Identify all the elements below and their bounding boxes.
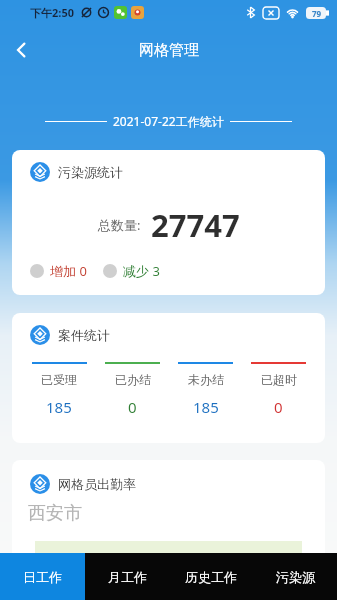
staticText: 未办结 [188, 372, 224, 387]
staticText: 日工作 [23, 569, 62, 585]
staticText: 下午2:50 [30, 5, 74, 20]
staticText: 减少 3 [123, 262, 160, 280]
staticText: 污染源 [276, 569, 315, 585]
staticText: 27747 [151, 204, 240, 246]
button[interactable]: 已受理 [22, 362, 96, 417]
staticText: 历史工作 [185, 569, 237, 585]
staticText: 185 [193, 397, 219, 417]
staticText: 79 [312, 8, 322, 19]
staticText: 185 [46, 397, 72, 417]
staticText: 污染源统计 [58, 164, 123, 180]
button[interactable]: 已办结 [96, 362, 169, 417]
button[interactable]: 未办结 [169, 362, 242, 417]
button[interactable] [14, 42, 30, 58]
staticText: 网格管理 [139, 41, 199, 60]
staticText: 网格员出勤率 [58, 476, 136, 492]
staticText: 月工作 [108, 569, 147, 585]
staticText: 案件统计 [58, 327, 110, 343]
button[interactable]: 月工作 [85, 553, 169, 600]
staticText: 2021-07-22工作统计 [113, 113, 224, 129]
staticText: 0 [128, 397, 137, 417]
button[interactable]: 污染源 [253, 553, 337, 600]
staticText: 西安市 [28, 502, 82, 525]
staticText: 已办结 [115, 372, 151, 387]
button[interactable]: 已超时 [242, 362, 315, 417]
button[interactable]: 日工作 [0, 553, 85, 600]
staticText: 增加 0 [50, 262, 87, 280]
staticText: 已受理 [41, 372, 77, 387]
button[interactable]: 历史工作 [169, 553, 253, 600]
staticText: 已超时 [261, 372, 297, 387]
staticText: 总数量: [98, 216, 141, 234]
staticText: 0 [274, 397, 283, 417]
